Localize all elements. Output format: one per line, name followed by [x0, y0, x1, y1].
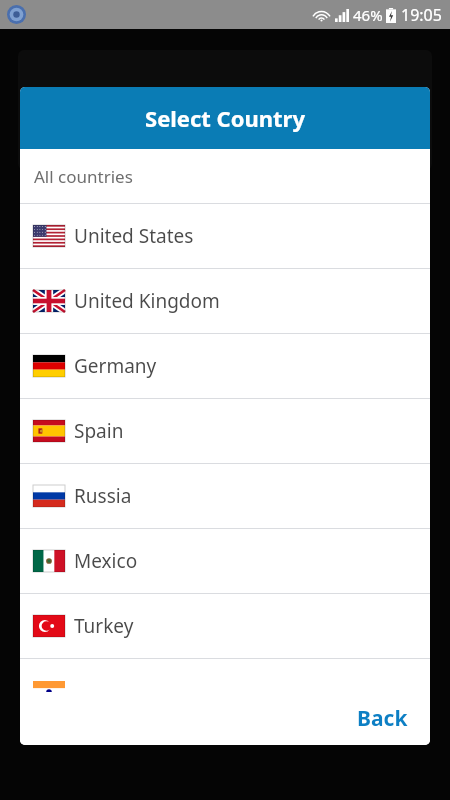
button[interactable]: Turkey	[20, 594, 430, 658]
staticText: United Kingdom	[74, 288, 220, 314]
button[interactable]: Mexico	[20, 529, 430, 593]
staticText: Spain	[74, 418, 124, 444]
staticText: 19:05	[401, 4, 442, 26]
button[interactable]: Russia	[20, 464, 430, 528]
staticText: Select Country	[145, 103, 305, 133]
button[interactable]: Germany	[20, 334, 430, 398]
button[interactable]: Back	[349, 698, 416, 739]
staticText: United States	[74, 223, 194, 249]
staticText: Germany	[74, 353, 157, 379]
button[interactable]: United Kingdom	[20, 269, 430, 333]
button[interactable]: Spain	[20, 399, 430, 463]
staticText: Russia	[74, 483, 132, 509]
staticText: Turkey	[74, 613, 134, 639]
button[interactable]: United States	[20, 204, 430, 268]
staticText: All countries	[34, 165, 133, 188]
staticText: Back	[357, 704, 408, 733]
staticText: 46%	[353, 5, 383, 25]
button[interactable]: Select Country	[20, 87, 430, 149]
staticText: Mexico	[74, 548, 138, 574]
